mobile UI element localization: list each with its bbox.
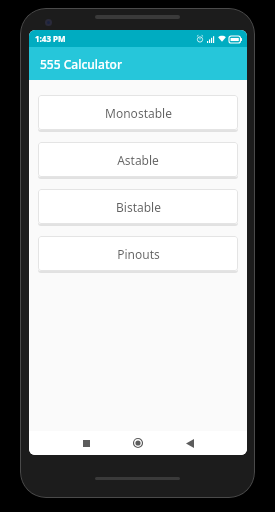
button[interactable]: Monostable: [38, 95, 238, 130]
staticText: 1:43 PM: [35, 33, 66, 44]
button[interactable]: Back: [164, 431, 216, 455]
staticText: Bistable: [116, 199, 161, 215]
button[interactable]: Recent apps: [60, 431, 112, 455]
staticText: Astable: [117, 152, 159, 168]
button[interactable]: Astable: [38, 142, 238, 177]
staticText: Pinouts: [117, 246, 160, 262]
button[interactable]: Home: [112, 431, 164, 455]
staticText: 555 Calculator: [40, 56, 122, 72]
button[interactable]: Bistable: [38, 189, 238, 224]
button[interactable]: Pinouts: [38, 236, 238, 271]
staticText: Monostable: [105, 105, 172, 121]
